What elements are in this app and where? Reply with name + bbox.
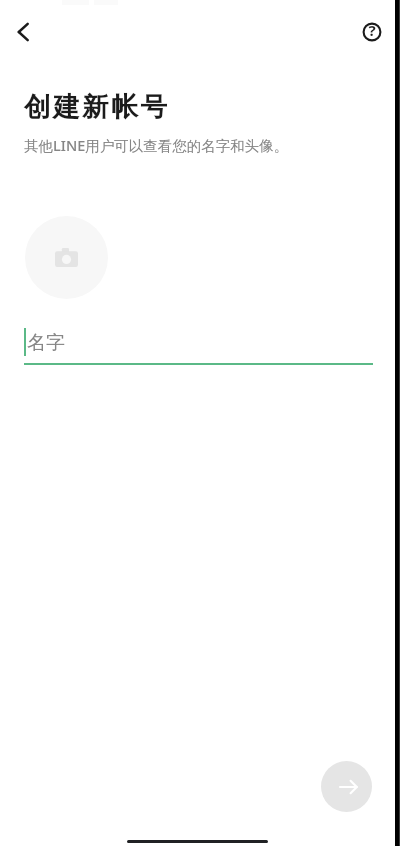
staticText: ?: [352, 20, 392, 60]
button[interactable]: Back: [3, 12, 43, 52]
button[interactable]: Help: [352, 12, 392, 52]
button[interactable]: Next: [321, 761, 372, 812]
button[interactable]: Add profile photo: [25, 216, 108, 299]
staticText: 名字: [27, 331, 65, 355]
staticText: 其他LINE用户可以查看您的名字和头像。: [24, 135, 289, 155]
staticText: 创建新帐号: [24, 90, 170, 123]
